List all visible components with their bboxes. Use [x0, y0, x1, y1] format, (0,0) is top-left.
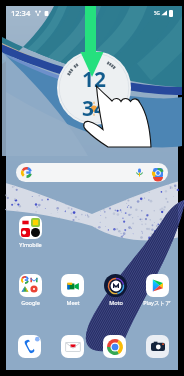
button[interactable]: Meet [51, 274, 93, 306]
button[interactable]: Camera [146, 335, 169, 358]
button[interactable]: Playストア [136, 274, 178, 307]
button[interactable] [16, 163, 168, 182]
staticText: Moto [109, 299, 123, 306]
button[interactable]: Chrome [103, 335, 126, 358]
staticText: Meet [66, 299, 80, 306]
button[interactable]: Y!mobile [9, 216, 51, 248]
button[interactable]: Phone [18, 335, 41, 358]
button[interactable]: Google [9, 274, 51, 306]
button[interactable]: 12 [57, 51, 131, 125]
button[interactable]: Moto [94, 274, 136, 306]
staticText: Google [21, 299, 40, 306]
button[interactable]: Mail [61, 335, 84, 358]
staticText: 5G [154, 10, 160, 16]
staticText: Y!mobile [19, 241, 42, 248]
staticText: 34 [82, 94, 107, 123]
staticText: 12 [82, 65, 107, 94]
staticText: 12:34 [11, 8, 31, 18]
staticText: Playストア [143, 299, 171, 307]
